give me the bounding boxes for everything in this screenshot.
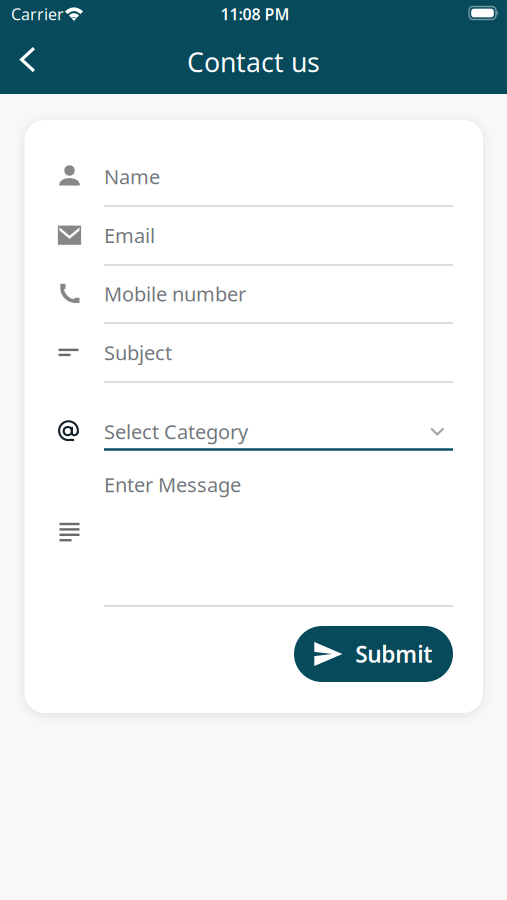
staticText: Email <box>104 222 155 248</box>
button[interactable]: Name <box>104 158 453 207</box>
staticText: Subject <box>104 339 172 366</box>
staticText: 11:08 PM <box>220 3 289 25</box>
button[interactable]: Back <box>4 36 52 84</box>
staticText: Enter Message <box>104 471 241 498</box>
button[interactable]: Submit <box>294 626 453 682</box>
staticText: Contact us <box>187 44 320 80</box>
button[interactable]: Mobile number <box>104 276 453 324</box>
staticText: Name <box>104 163 160 190</box>
button[interactable]: Enter Message <box>104 466 453 604</box>
staticText: Select Category <box>104 418 248 445</box>
button[interactable]: Subject <box>104 334 453 383</box>
staticText: Submit <box>355 639 432 669</box>
button[interactable]: Select Category <box>104 413 453 451</box>
button[interactable]: Email <box>104 217 453 266</box>
staticText: Mobile number <box>104 280 246 307</box>
staticText: Carrier <box>11 3 64 25</box>
